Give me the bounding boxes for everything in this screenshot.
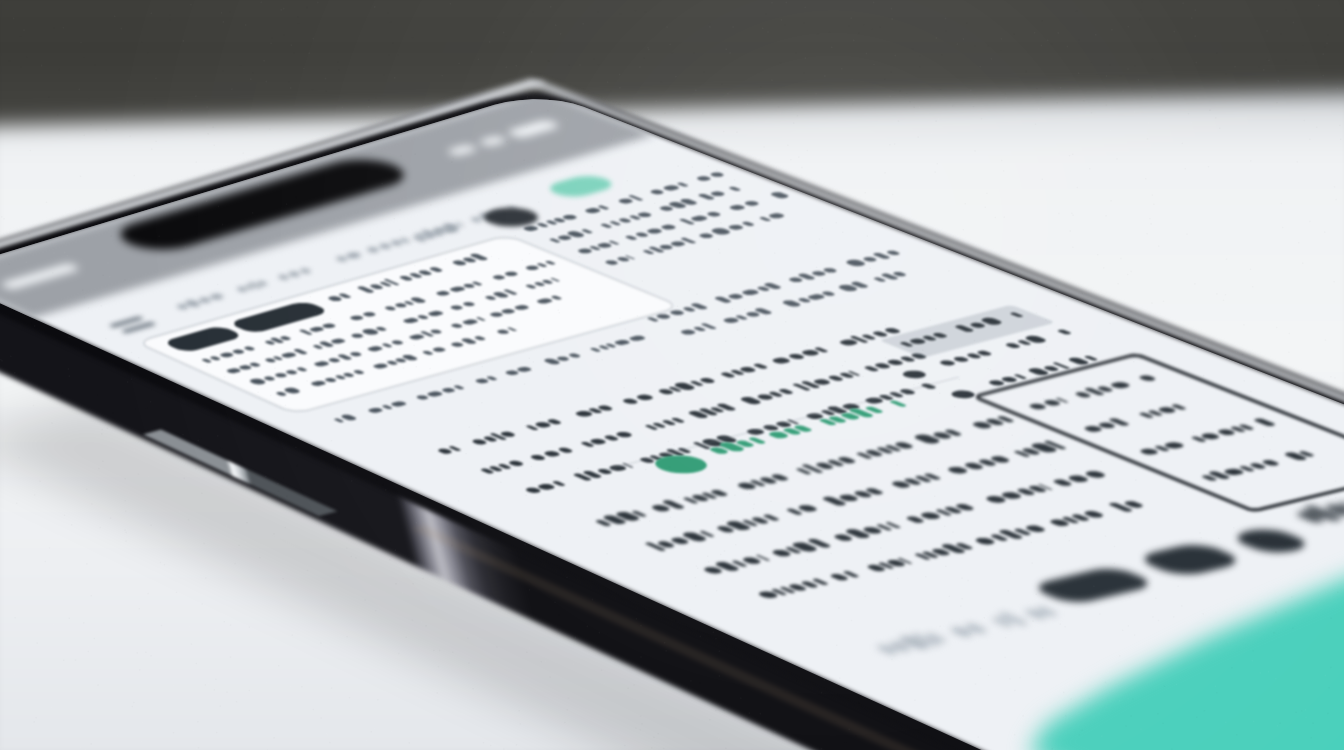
button[interactable]: Search xyxy=(230,256,490,316)
button[interactable]: Details panel xyxy=(980,350,1280,520)
button[interactable]: Status badge xyxy=(556,160,634,212)
button[interactable]: Profile xyxy=(472,182,552,244)
button[interactable]: New note xyxy=(1010,600,1344,750)
button[interactable]: Verified by team xyxy=(620,420,950,500)
button[interactable]: Note card xyxy=(150,300,670,490)
button[interactable]: Menu xyxy=(108,286,194,342)
